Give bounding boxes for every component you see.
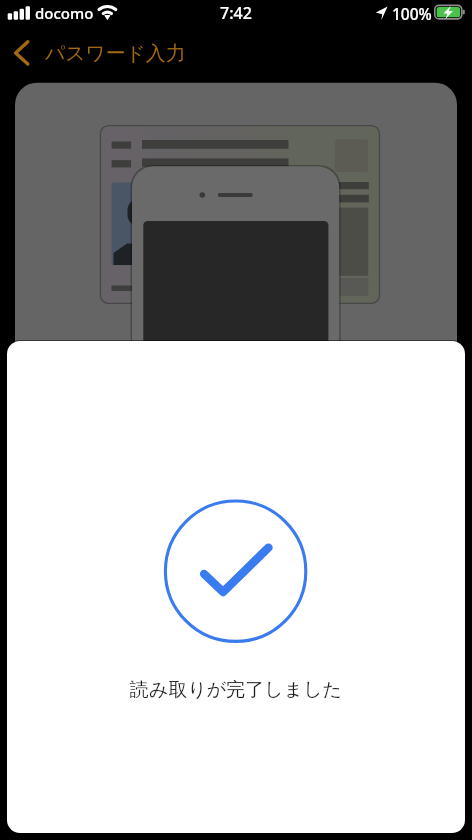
staticText: 7:42: [0, 2, 472, 840]
staticText: パスワード入力: [45, 41, 186, 66]
staticText: docomo: [35, 3, 94, 23]
button[interactable]: パスワード入力: [8, 34, 198, 72]
staticText: 100%: [392, 3, 432, 24]
staticText: 読み取りが完了しました: [7, 678, 465, 833]
